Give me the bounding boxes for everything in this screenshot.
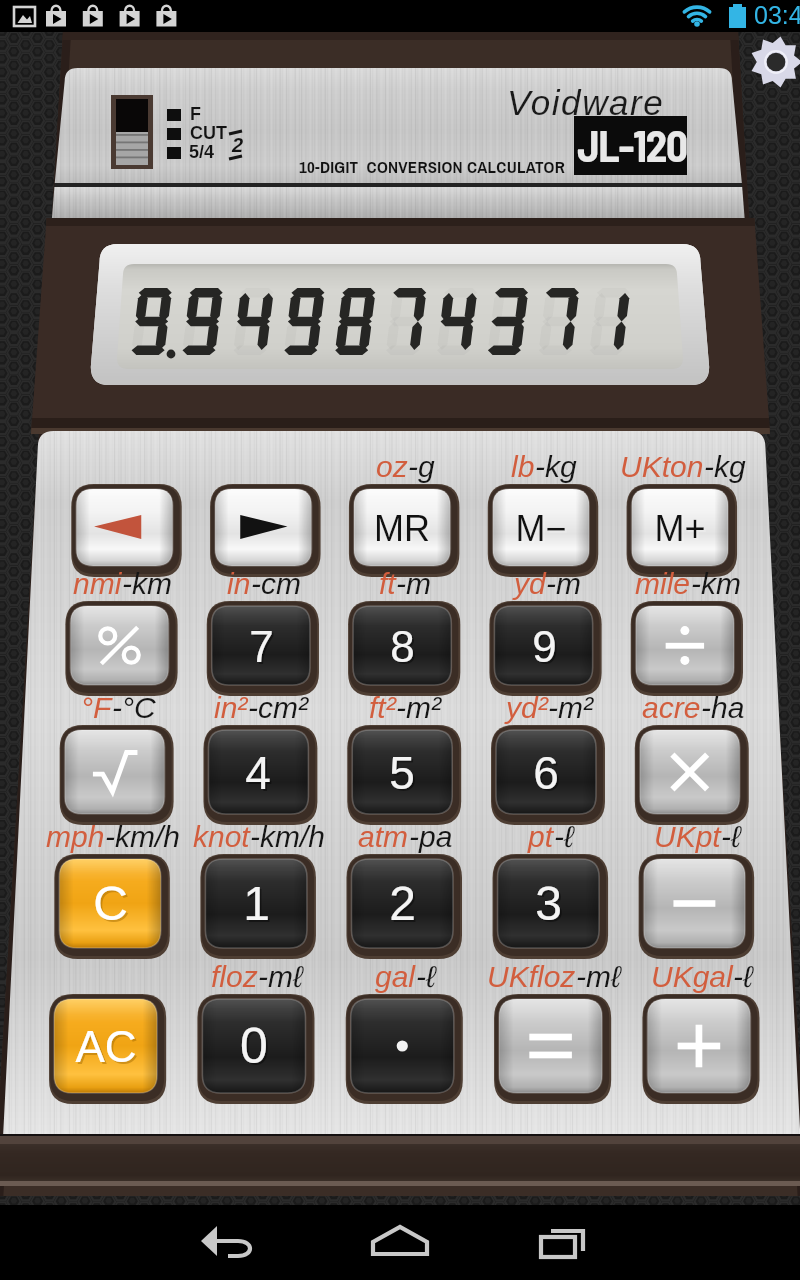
staticText: -g	[408, 450, 435, 484]
button[interactable]: 5	[352, 730, 452, 814]
staticText: floz	[211, 960, 258, 994]
staticText: 0	[240, 1018, 268, 1074]
button[interactable]: 3	[498, 859, 600, 948]
staticText: 5	[391, 749, 417, 800]
staticText: -m²	[548, 691, 593, 725]
staticText: -cm	[251, 567, 301, 601]
staticText: 7	[251, 624, 276, 673]
button[interactable]: Multiply	[640, 730, 740, 814]
button[interactable]: 0	[202, 999, 305, 1093]
staticText: -mℓ	[576, 960, 621, 994]
staticText: 2	[389, 877, 416, 931]
staticText: nmi	[73, 567, 122, 601]
staticText: 8	[392, 624, 417, 673]
staticText: 5/4	[189, 142, 215, 162]
staticText: CUT	[190, 123, 227, 143]
button[interactable]: C	[59, 859, 161, 948]
staticText: pt	[528, 820, 554, 854]
staticText: mile	[635, 567, 691, 601]
button[interactable]: 9	[494, 606, 592, 685]
staticText: 4	[247, 749, 273, 800]
button[interactable]: Square root	[65, 730, 165, 814]
staticText: AC	[77, 1024, 139, 1073]
staticText: UKfloz	[487, 960, 576, 994]
staticText: M−	[517, 510, 569, 550]
staticText: 0	[242, 1020, 270, 1076]
button[interactable]: 2	[351, 859, 453, 948]
staticText: in²	[214, 691, 248, 725]
button[interactable]: Minus	[644, 859, 746, 948]
button[interactable]: M+	[632, 489, 728, 566]
staticText: gal	[375, 960, 416, 994]
staticText: C	[95, 879, 130, 933]
button[interactable]: Back	[188, 1215, 278, 1280]
staticText: -ℓ	[721, 820, 741, 854]
staticText: -mℓ	[258, 960, 303, 994]
staticText: -°C	[112, 691, 156, 725]
button[interactable]: AC	[54, 999, 157, 1093]
button[interactable]: 6	[496, 730, 596, 814]
staticText: -kg	[535, 450, 577, 484]
staticText: MR	[376, 510, 432, 550]
staticText: -m	[546, 567, 581, 601]
button[interactable]: Percent	[70, 606, 168, 685]
staticText: mph	[46, 820, 105, 854]
staticText: 1	[245, 879, 272, 933]
button[interactable]: 7	[212, 606, 310, 685]
button[interactable]: Backspace	[76, 489, 172, 566]
button[interactable]: Decimal mode switch	[111, 95, 153, 169]
staticText: 6	[535, 749, 561, 800]
staticText: -m	[396, 567, 431, 601]
button[interactable]: Recent apps	[523, 1215, 613, 1280]
staticText: JL-120	[577, 119, 687, 171]
staticText: M+	[656, 510, 708, 550]
staticText: in	[227, 567, 251, 601]
staticText: Voidware	[507, 83, 665, 122]
staticText: 3	[535, 877, 562, 931]
button[interactable]: MR	[354, 489, 450, 566]
staticText: -ha	[701, 691, 745, 725]
button[interactable]: Home	[355, 1215, 445, 1280]
staticText: acre	[642, 691, 701, 725]
staticText: M−	[515, 508, 567, 548]
staticText: M+	[654, 508, 706, 548]
staticText: -ℓ	[733, 960, 753, 994]
staticText: MR	[374, 508, 430, 548]
staticText: 1	[243, 877, 270, 931]
staticText: yd²	[506, 691, 548, 725]
staticText: yd	[514, 567, 546, 601]
staticText: oz	[376, 450, 408, 484]
staticText: 9	[534, 624, 559, 673]
staticText: UKton	[620, 450, 704, 484]
staticText: ft	[379, 567, 396, 601]
staticText: -ℓ	[416, 960, 436, 994]
staticText: 6	[533, 747, 559, 798]
button[interactable]: Settings	[748, 34, 800, 90]
staticText: 03:42	[754, 1, 800, 29]
staticText: -km	[691, 567, 741, 601]
staticText: 9	[532, 622, 557, 671]
staticText: -km	[122, 567, 172, 601]
staticText: 3	[537, 879, 564, 933]
staticText: F	[190, 104, 201, 124]
button[interactable]: Divide	[636, 606, 734, 685]
staticText: C	[93, 877, 128, 931]
staticText: lb	[511, 450, 535, 484]
button[interactable]: 4	[208, 730, 308, 814]
button[interactable]: M−	[493, 489, 589, 566]
button[interactable]: Plus	[647, 999, 750, 1093]
button[interactable]: Decimal point	[351, 999, 454, 1093]
staticText: -kg	[704, 450, 746, 484]
staticText: -cm²	[248, 691, 308, 725]
button[interactable]: Equals	[499, 999, 602, 1093]
button[interactable]: Forward	[215, 489, 311, 566]
staticText: -m²	[396, 691, 441, 725]
button[interactable]: 1	[205, 859, 307, 948]
staticText: 5	[389, 747, 415, 798]
staticText: 4	[245, 747, 271, 798]
button[interactable]: 8	[353, 606, 451, 685]
staticText: 10-DIGIT CONVERSION CALCULATOR	[299, 155, 565, 178]
staticText: UKpt	[654, 820, 721, 854]
staticText: 2	[232, 134, 244, 156]
staticText: 8	[390, 622, 415, 671]
